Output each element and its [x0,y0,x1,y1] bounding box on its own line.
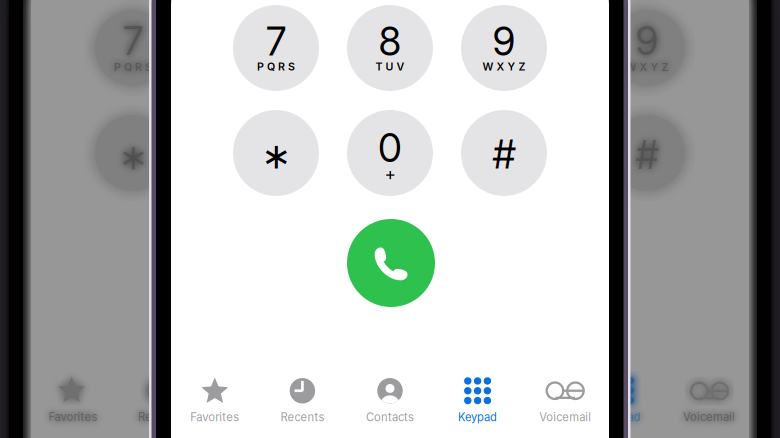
button[interactable]: # [461,110,547,196]
staticText: T U V [232,60,261,73]
staticText: Keypad [315,410,354,424]
staticText: Recents [424,410,468,424]
staticText: ∗ [404,136,434,178]
staticText: 0 [521,125,545,171]
button[interactable]: Contacts [346,376,434,423]
staticText: 7 [266,18,286,65]
staticText: Voicemail [539,410,591,424]
staticText: 9 [349,18,372,64]
button[interactable]: 0 [347,110,433,196]
staticText: P Q R S [400,60,438,73]
staticText: + [384,163,395,184]
staticText: 0 [378,125,402,171]
button[interactable]: Keypad [434,376,521,423]
staticText: Favorites [190,410,239,424]
staticText: P Q R S [114,60,152,73]
staticText: W X Y Z [482,60,525,73]
staticText: T U V [518,60,547,73]
staticText: Favorites [334,410,383,424]
staticText: Recents [280,410,324,424]
staticText: 9 [492,18,515,65]
staticText: 8 [521,18,544,64]
staticText: Contacts [366,410,414,424]
button[interactable]: 9 [461,5,547,91]
staticText: 7 [409,18,429,64]
staticText: Favorites [48,410,97,424]
staticText: # [492,131,515,178]
staticText: Voicemail [683,410,735,424]
staticText: W X Y Z [339,60,382,73]
staticText: W X Y Z [625,60,668,73]
staticText: 9 [635,18,658,64]
staticText: # [635,132,658,178]
staticText: Keypad [601,410,640,424]
staticText: Keypad [458,410,497,424]
button[interactable]: ∗ [233,110,319,196]
staticText: Voicemail [397,410,449,424]
staticText: P Q R S [257,60,295,73]
staticText: 8 [235,18,258,64]
button[interactable]: Recents [259,376,346,423]
staticText: T U V [375,60,404,73]
staticText: Contacts [223,410,271,424]
button[interactable]: Favorites [171,376,259,423]
button[interactable]: Call [347,219,435,307]
staticText: ∗ [118,136,148,178]
button[interactable]: 7 [233,5,319,91]
staticText: Contacts [509,410,557,424]
staticText: 7 [123,18,143,64]
staticText: # [349,132,372,178]
staticText: Recents [138,410,182,424]
staticText: 8 [378,18,401,65]
button[interactable]: 8 [347,5,433,91]
staticText: ∗ [261,135,291,177]
staticText: 0 [235,125,259,171]
button[interactable]: Voicemail [521,376,609,423]
